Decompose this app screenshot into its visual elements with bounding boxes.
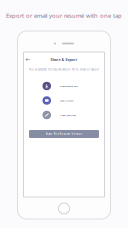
- staticText: Export or email your resumé with one tap: [6, 12, 122, 19]
- staticText: You've selected the resume version N1 to…: [29, 68, 99, 71]
- button[interactable]: Send in Email: [42, 93, 82, 107]
- staticText: Copy (file/link): [60, 113, 76, 117]
- staticText: Send in Email: [60, 99, 74, 102]
- button[interactable]: Back: [23, 55, 32, 64]
- staticText: Download as PDF: [60, 84, 78, 88]
- button[interactable]: Share This Resume Version: [29, 130, 99, 138]
- button[interactable]: Download as PDF: [42, 79, 82, 93]
- staticText: Share & Export: [50, 57, 77, 62]
- button[interactable]: Copy (file/link): [42, 108, 82, 122]
- staticText: Share This Resume Version: [45, 132, 82, 136]
